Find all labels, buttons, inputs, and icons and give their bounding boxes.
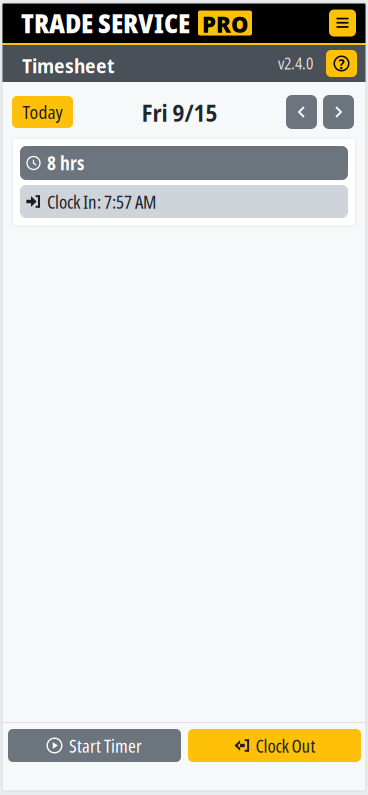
staticText: v2.4.0 — [278, 53, 313, 74]
staticText: ? — [338, 53, 344, 73]
staticText: Fri 9/15 — [141, 98, 217, 128]
staticText: Timesheet — [22, 52, 115, 79]
staticText: Today — [22, 100, 62, 124]
staticText: Start Timer — [69, 733, 142, 758]
button[interactable]: Menu — [329, 9, 356, 36]
button[interactable]: Help — [326, 50, 357, 77]
button[interactable]: Previous day — [286, 95, 317, 129]
staticText: PRO — [202, 9, 248, 39]
button[interactable]: Clock Out — [188, 729, 361, 762]
button[interactable]: Clock In: 7:57 AM — [20, 185, 348, 218]
staticText: 8 hrs — [47, 150, 84, 176]
button[interactable]: Start Timer — [8, 729, 181, 762]
button[interactable]: Next day — [323, 95, 354, 129]
staticText: Clock Out — [255, 733, 315, 758]
button[interactable]: Today — [12, 96, 73, 128]
staticText: Clock In: 7:57 AM — [47, 189, 156, 214]
staticText: TRADE SERVICE — [21, 5, 190, 41]
